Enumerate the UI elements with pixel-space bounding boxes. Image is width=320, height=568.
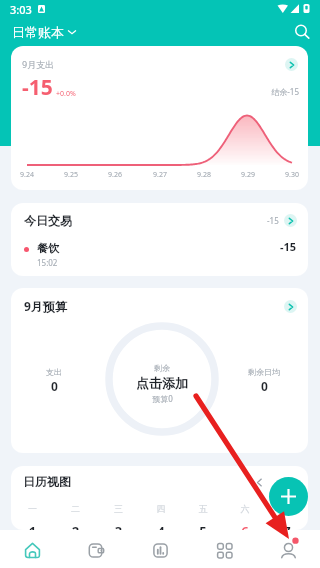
- button[interactable]: Categories: [192, 530, 256, 568]
- staticText: 1: [11, 522, 54, 530]
- staticText: 9月支出: [22, 58, 55, 70]
- staticText: -15: [267, 215, 279, 226]
- staticText: 3:03: [10, 2, 32, 17]
- staticText: 点击添加: [136, 375, 188, 391]
- button[interactable]: Statistics: [128, 530, 192, 568]
- staticText: 9.24: [13, 170, 41, 180]
- staticText: 0: [261, 378, 268, 394]
- staticText: 4: [140, 522, 182, 530]
- staticText: 15:02: [37, 257, 58, 268]
- staticText: 一: [11, 503, 54, 514]
- staticText: 五: [182, 503, 224, 514]
- staticText: 6: [224, 522, 266, 530]
- button[interactable]: 日常账本: [12, 24, 76, 40]
- staticText: +0.0%: [56, 89, 76, 99]
- button[interactable]: Add record: [269, 477, 308, 516]
- staticText: 结余-15: [251, 86, 299, 97]
- staticText: 日历视图: [23, 474, 71, 489]
- button[interactable]: 今日交易: [24, 203, 297, 238]
- staticText: 剩余日均: [248, 367, 280, 377]
- staticText: 六: [224, 503, 266, 514]
- staticText: 7: [266, 522, 308, 530]
- button[interactable]: Previous month: [251, 474, 267, 490]
- staticText: 支出: [46, 367, 62, 377]
- staticText: 四: [140, 503, 182, 514]
- button[interactable]: Open details: [284, 214, 297, 227]
- staticText: 三: [97, 503, 140, 514]
- button[interactable]: 9月预算: [11, 288, 308, 453]
- button[interactable]: Search: [287, 21, 309, 43]
- staticText: 日常账本: [12, 24, 64, 40]
- button[interactable]: Open details: [284, 300, 297, 313]
- staticText: 9.27: [146, 170, 174, 180]
- staticText: 日: [266, 503, 308, 514]
- button[interactable]: 9月支出: [11, 46, 308, 190]
- staticText: 2: [54, 522, 97, 530]
- staticText: -15: [22, 73, 53, 102]
- staticText: 3: [97, 522, 140, 530]
- button[interactable]: Wallet: [64, 530, 128, 568]
- staticText: 剩余: [154, 363, 170, 373]
- staticText: 5: [182, 522, 224, 530]
- staticText: 今日交易: [24, 213, 72, 228]
- staticText: 9.25: [57, 170, 85, 180]
- button[interactable]: Next month: [281, 474, 297, 490]
- staticText: 9月预算: [24, 298, 67, 314]
- button[interactable]: 餐饮: [24, 234, 297, 270]
- staticText: 0: [51, 378, 58, 394]
- button[interactable]: Home: [0, 530, 64, 568]
- staticText: -15: [280, 239, 297, 254]
- staticText: 预算0: [152, 393, 173, 404]
- button[interactable]: Profile: [256, 530, 320, 568]
- staticText: 9.29: [234, 170, 262, 180]
- staticText: 二: [54, 503, 97, 514]
- staticText: 9.30: [278, 170, 306, 180]
- button[interactable]: Open details: [285, 58, 298, 71]
- staticText: 9.28: [190, 170, 218, 180]
- staticText: 餐饮: [37, 241, 59, 255]
- staticText: 9.26: [101, 170, 129, 180]
